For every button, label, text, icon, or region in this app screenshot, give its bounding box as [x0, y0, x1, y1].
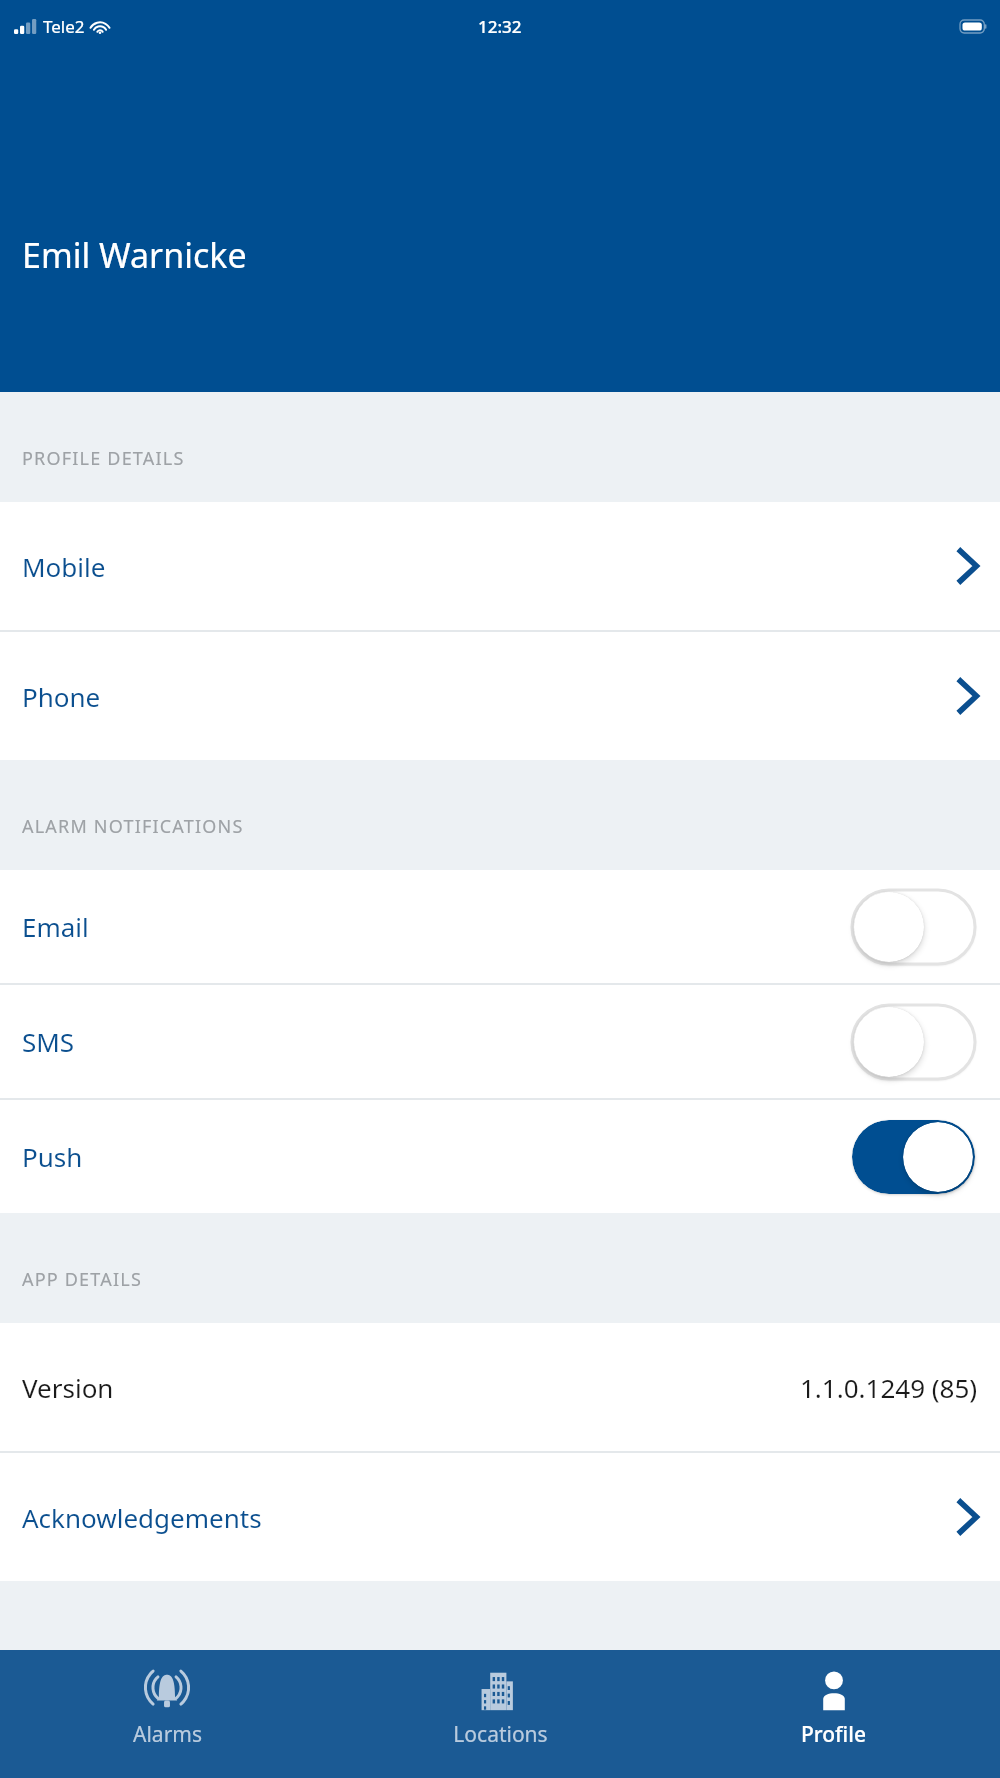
- other: On: [852, 1120, 975, 1194]
- button[interactable]: Phone: [0, 632, 1000, 760]
- staticText: Emil Warnicke: [22, 232, 247, 278]
- button[interactable]: Locations: [334, 1650, 667, 1778]
- button[interactable]: Alarms: [0, 1650, 334, 1778]
- other: Off: [852, 1005, 975, 1079]
- staticText: Phone: [22, 679, 101, 714]
- staticText: Profile: [801, 1720, 866, 1749]
- staticText: ALARM NOTIFICATIONS: [22, 814, 244, 839]
- button[interactable]: Mobile: [0, 502, 1000, 630]
- staticText: Alarms: [133, 1720, 202, 1749]
- button[interactable]: Email: [0, 870, 1000, 983]
- staticText: Version: [22, 1370, 114, 1405]
- button[interactable]: SMS: [0, 985, 1000, 1098]
- staticText: 12:32: [478, 15, 522, 38]
- button[interactable]: Acknowledgements: [0, 1453, 1000, 1581]
- staticText: Acknowledgements: [22, 1500, 262, 1535]
- staticText: 1.1.0.1249 (85): [800, 1370, 978, 1405]
- staticText: Email: [22, 909, 89, 944]
- staticText: APP DETAILS: [22, 1267, 142, 1292]
- other: Off: [852, 890, 975, 964]
- button[interactable]: Profile: [667, 1650, 1000, 1778]
- staticText: PROFILE DETAILS: [22, 446, 185, 471]
- staticText: SMS: [22, 1024, 75, 1059]
- button[interactable]: Push: [0, 1100, 1000, 1213]
- staticText: Mobile: [22, 549, 106, 584]
- staticText: Push: [22, 1139, 83, 1174]
- staticText: Locations: [453, 1720, 548, 1749]
- staticText: Tele2: [43, 15, 85, 38]
